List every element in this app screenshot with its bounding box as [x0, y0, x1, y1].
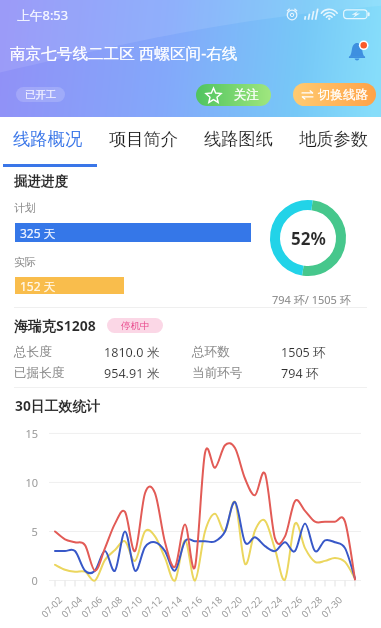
staticText: 线路概况 — [13, 128, 83, 150]
staticText: 当前环号 — [192, 365, 243, 381]
staticText: 计划 — [14, 201, 36, 215]
staticText: 海瑞克S1208 — [14, 316, 96, 335]
staticText: 1810.0 米 — [104, 344, 160, 361]
staticText: 掘进进度 — [14, 173, 68, 190]
staticText: 切换线路 — [318, 87, 368, 103]
staticText: 794 环/ 1505 环 — [272, 292, 351, 307]
staticText: 已掘长度 — [14, 365, 65, 381]
button[interactable]: 关注 — [196, 84, 271, 106]
button[interactable]: 切换线路 — [293, 83, 376, 106]
staticText: 关注 — [234, 87, 259, 103]
staticText: 325 天 — [20, 225, 56, 241]
staticText: 地质参数 — [299, 128, 369, 150]
staticText: 实际 — [14, 255, 36, 269]
staticText: 项目简介 — [109, 128, 179, 150]
button[interactable]: Notifications — [345, 40, 369, 64]
button[interactable]: 已开工 — [16, 87, 65, 102]
staticText: 线路图纸 — [204, 128, 274, 150]
staticText: 南京七号线二工区 西螺区间-右线 — [10, 42, 238, 63]
staticText: 已开工 — [25, 88, 57, 101]
staticText: 停机中 — [121, 320, 150, 332]
staticText: 上午8:53 — [17, 6, 68, 23]
staticText: 总长度 — [14, 344, 52, 360]
staticText: 30日工效统计 — [15, 396, 100, 415]
staticText: 总环数 — [192, 344, 230, 360]
staticText: 794 环 — [281, 365, 319, 382]
button[interactable]: 地质参数 — [286, 117, 381, 161]
staticText: 52% — [291, 227, 326, 250]
button[interactable]: 线路图纸 — [191, 117, 286, 161]
staticText: 954.91 米 — [104, 365, 160, 382]
button[interactable]: 项目简介 — [96, 117, 191, 161]
staticText: 152 天 — [20, 278, 56, 294]
staticText: 1505 环 — [281, 344, 326, 361]
button[interactable]: 线路概况 — [0, 117, 96, 161]
